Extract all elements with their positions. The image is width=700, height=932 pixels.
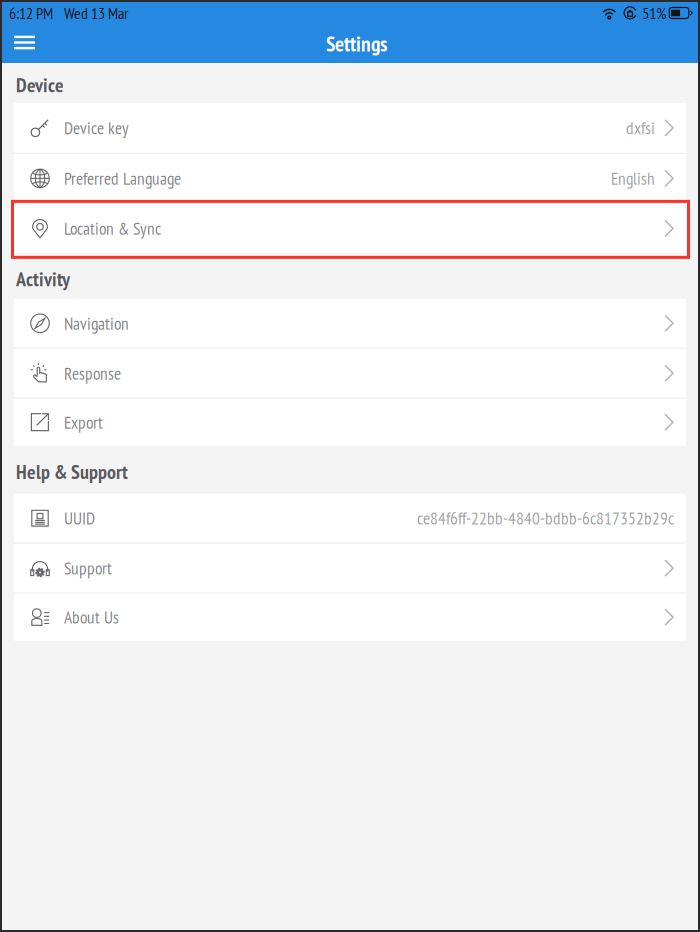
staticText: Device key: [64, 117, 129, 139]
staticText: ce84f6ff-22bb-4840-bdbb-6c817352b29c: [417, 507, 674, 529]
staticText: Settings: [326, 30, 387, 57]
staticText: 6:12 PM: [9, 3, 53, 23]
staticText: Wed 13 Mar: [64, 3, 128, 23]
button[interactable]: Export: [14, 399, 686, 446]
button[interactable]: Support: [14, 544, 686, 593]
button[interactable]: Menu: [4, 25, 45, 62]
button[interactable]: Navigation: [14, 299, 686, 348]
button[interactable]: UUID: [14, 494, 686, 543]
staticText: Location & Sync: [64, 217, 161, 240]
staticText: Preferred Language: [64, 167, 181, 190]
staticText: Support: [64, 557, 112, 579]
button[interactable]: Response: [14, 349, 686, 398]
staticText: Export: [64, 411, 103, 433]
staticText: About Us: [64, 606, 119, 628]
button[interactable]: Location & Sync: [14, 204, 686, 253]
staticText: dxfsi: [626, 117, 655, 139]
button[interactable]: About Us: [14, 594, 686, 641]
staticText: Activity: [16, 266, 70, 292]
staticText: UUID: [64, 507, 95, 529]
button[interactable]: Preferred Language: [14, 154, 686, 203]
staticText: Response: [64, 362, 121, 384]
staticText: Device: [16, 72, 64, 98]
staticText: Help & Support: [16, 459, 128, 485]
button[interactable]: Device key: [14, 103, 686, 153]
staticText: English: [611, 167, 655, 190]
staticText: 51%: [642, 3, 666, 23]
staticText: Navigation: [64, 312, 129, 334]
